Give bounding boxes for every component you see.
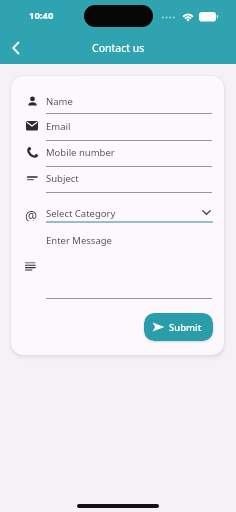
staticText: Mobile number <box>46 146 115 159</box>
button[interactable] <box>3 36 29 60</box>
button[interactable]: Submit <box>144 313 213 341</box>
staticText: 10:40 <box>29 9 54 22</box>
button[interactable]: Name <box>19 90 219 112</box>
staticText: @ <box>25 207 38 221</box>
staticText: Email <box>46 120 71 133</box>
button[interactable]: Subject <box>19 167 219 189</box>
button[interactable]: Email <box>19 115 219 137</box>
staticText: Subject <box>46 172 79 185</box>
staticText: Enter Message <box>46 234 112 247</box>
button[interactable]: @ <box>19 201 219 225</box>
staticText: Select Category <box>46 207 116 220</box>
button[interactable]: Mobile number <box>19 141 219 163</box>
staticText: Contact us <box>92 41 145 55</box>
staticText: Submit <box>169 321 202 334</box>
staticText: Name <box>46 95 73 108</box>
